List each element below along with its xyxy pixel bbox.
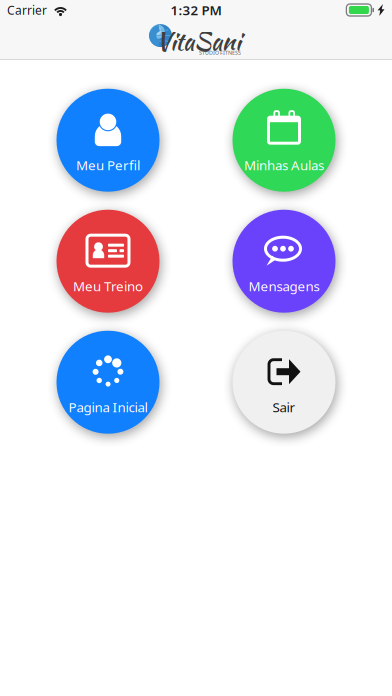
- staticText: Carrier: [7, 2, 47, 18]
- staticText: STUDIO FITNESS: [199, 49, 241, 56]
- staticText: Pagina Inicial: [68, 398, 147, 416]
- staticText: VitaSani: [156, 24, 241, 59]
- button[interactable]: Meu Treino: [56, 210, 159, 313]
- button[interactable]: Mensagens: [232, 210, 335, 313]
- staticText: Minhas Aulas: [244, 156, 324, 174]
- button[interactable]: Minhas Aulas: [232, 89, 335, 192]
- staticText: 1:32 PM: [170, 1, 221, 19]
- button[interactable]: Sair: [232, 331, 335, 434]
- staticText: Sair: [272, 398, 295, 416]
- button[interactable]: Pagina Inicial: [56, 331, 159, 434]
- staticText: Meu Perfil: [76, 156, 140, 174]
- staticText: Mensagens: [248, 277, 319, 295]
- button[interactable]: Meu Perfil: [56, 89, 159, 192]
- staticText: Meu Treino: [73, 277, 143, 295]
